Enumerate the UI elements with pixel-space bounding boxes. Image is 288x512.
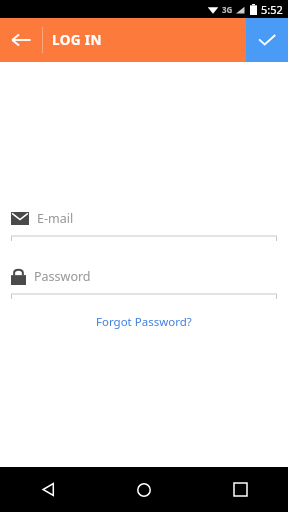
staticText: Forgot Password? [96, 314, 192, 330]
staticText: 5:52 [261, 2, 283, 17]
button[interactable]: E-mail [11, 206, 277, 241]
button[interactable]: Recent apps [192, 467, 288, 512]
button[interactable]: Confirm [246, 18, 288, 62]
staticText: E-mail [37, 210, 74, 227]
staticText: Password [34, 268, 91, 285]
button[interactable]: Back [0, 18, 42, 62]
staticText: 3G [222, 4, 233, 15]
button[interactable]: Home [96, 467, 192, 512]
button[interactable]: Back [0, 467, 96, 512]
button[interactable]: Forgot Password? [88, 311, 200, 333]
staticText: LOG IN [52, 31, 102, 49]
button[interactable]: Password [11, 264, 277, 299]
